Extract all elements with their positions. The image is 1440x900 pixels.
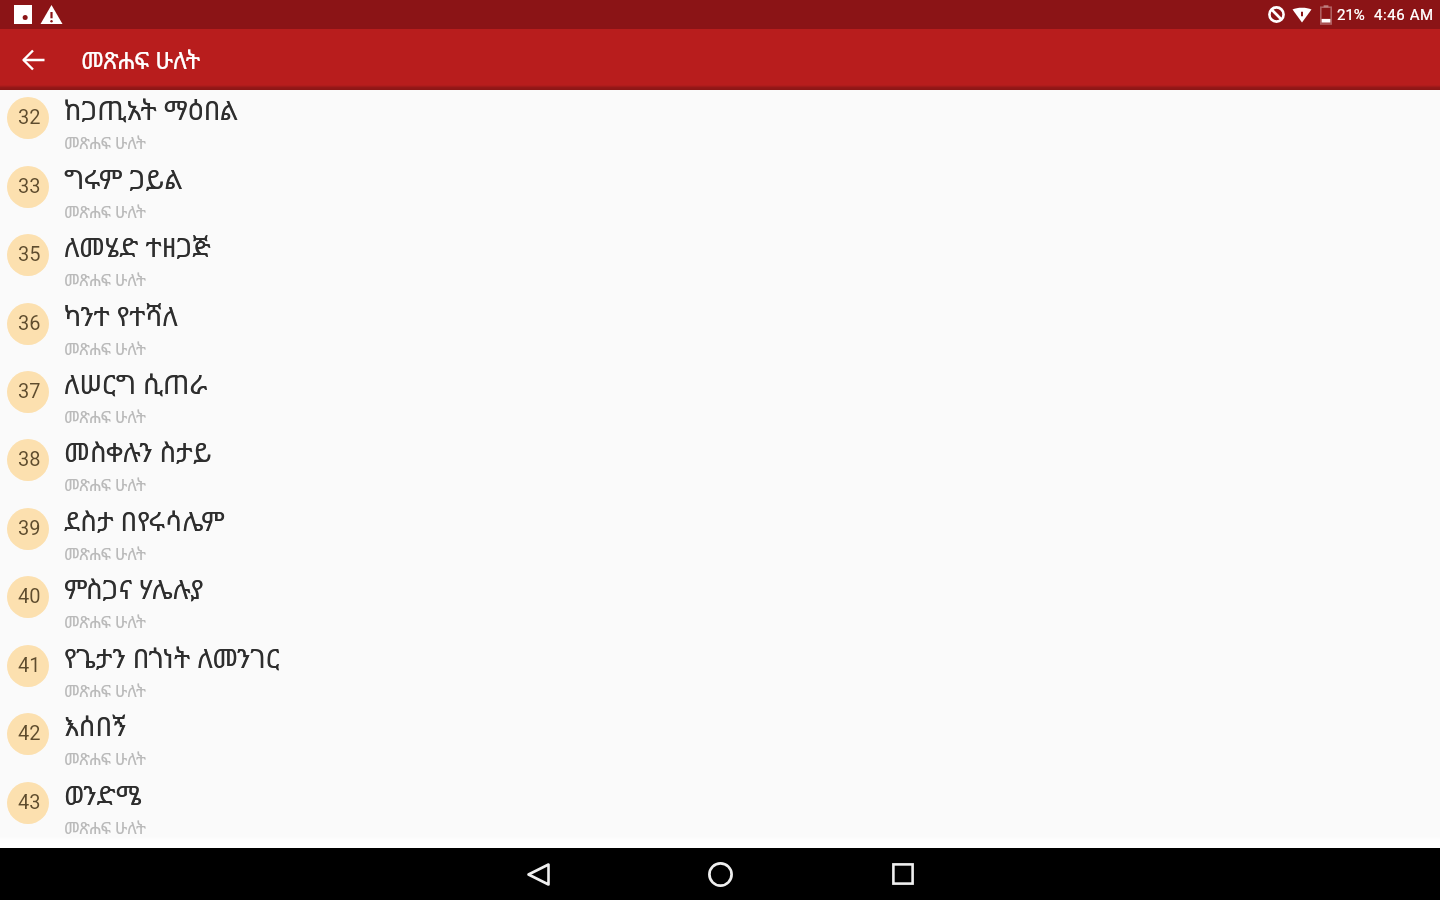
button[interactable]: 38 <box>0 426 1440 494</box>
staticText: መጽሐፍ ሁለት <box>64 816 147 838</box>
staticText: ምስጋና ሃሌሉያ <box>64 570 204 607</box>
staticText: ካንተ የተሻለ <box>64 297 179 334</box>
staticText: 36 <box>18 311 41 334</box>
staticText: መጽሐፍ ሁለት <box>64 679 147 701</box>
staticText: 21% <box>1337 6 1365 24</box>
button[interactable]: 41 <box>0 632 1440 700</box>
staticText: ደስታ በየሩሳሌም <box>64 502 225 539</box>
staticText: 32 <box>18 105 41 128</box>
button[interactable]: Back <box>510 848 566 900</box>
staticText: ለመሄድ ተዘጋጅ <box>64 228 211 265</box>
staticText: መጽሐፍ ሁለት <box>64 405 147 427</box>
staticText: 42 <box>18 721 41 744</box>
staticText: 35 <box>18 242 41 265</box>
staticText: ለሠርግ ሲጠራ <box>64 365 208 402</box>
staticText: የጌታን በጎነት ለመንገር <box>64 639 280 676</box>
staticText: ደስታ በየሩሳሌም <box>64 502 225 539</box>
staticText: ለመሄድ ተዘጋጅ <box>64 228 211 265</box>
staticText: መጽሐፍ ሁለት <box>81 43 201 76</box>
staticText: እሰበኝ <box>64 707 127 744</box>
staticText: ለሠርግ ሲጠራ <box>64 365 208 402</box>
button[interactable]: Recents <box>875 848 931 900</box>
staticText: 4:46 AM <box>1374 6 1434 24</box>
button[interactable]: 33 <box>0 153 1440 221</box>
staticText: 38 <box>18 447 41 470</box>
staticText: እሰበኝ <box>64 707 127 744</box>
button[interactable]: 39 <box>0 495 1440 563</box>
staticText: 40 <box>18 584 41 607</box>
staticText: ግሩም ጋይል <box>64 160 183 197</box>
staticText: ከጋጢአት ማዕበል <box>64 91 238 128</box>
staticText: መጽሐፍ ሁለት <box>64 337 147 359</box>
staticText: 41 <box>18 653 41 676</box>
button[interactable]: 35 <box>0 221 1440 289</box>
staticText: ምስጋና ሃሌሉያ <box>64 570 204 607</box>
staticText: 39 <box>18 516 41 539</box>
staticText: 37 <box>18 379 41 402</box>
button[interactable]: 36 <box>0 290 1440 358</box>
staticText: መስቀሉን ስታይ <box>64 433 212 470</box>
staticText: መጽሐፍ ሁለት <box>64 200 147 222</box>
button[interactable]: Home <box>692 848 748 900</box>
button[interactable]: 40 <box>0 563 1440 631</box>
button[interactable]: 32 <box>0 90 1440 152</box>
staticText: 43 <box>18 790 41 813</box>
staticText: የጌታን በጎነት ለመንገር <box>64 639 280 676</box>
staticText: ወንድሜ <box>64 776 142 813</box>
button[interactable]: 43 <box>0 769 1440 837</box>
staticText: መጽሐፍ ሁለት <box>64 542 147 564</box>
button[interactable]: Back <box>14 40 54 80</box>
staticText: መጽሐፍ ሁለት <box>64 610 147 632</box>
staticText: መጽሐፍ ሁለት <box>64 268 147 290</box>
staticText: መጽሐፍ ሁለት <box>64 747 147 769</box>
staticText: መጽሐፍ ሁለት <box>64 473 147 495</box>
staticText: መስቀሉን ስታይ <box>64 433 212 470</box>
staticText: 33 <box>18 174 41 197</box>
staticText: ግሩም ጋይል <box>64 160 183 197</box>
button[interactable]: 37 <box>0 358 1440 426</box>
button[interactable]: 42 <box>0 700 1440 768</box>
staticText: ካንተ የተሻለ <box>64 297 179 334</box>
staticText: ወንድሜ <box>64 776 142 813</box>
staticText: ከጋጢአት ማዕበል <box>64 91 238 128</box>
staticText: መጽሐፍ ሁለት <box>64 131 147 153</box>
